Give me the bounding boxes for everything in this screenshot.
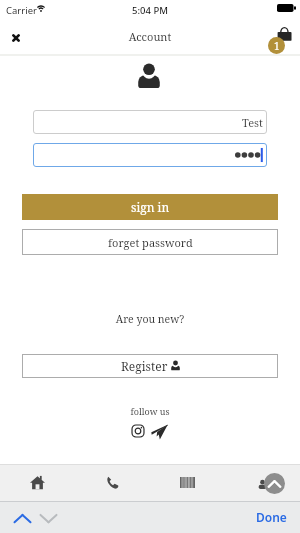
staticText: Account [0,29,300,44]
staticText: Done [256,509,287,525]
button[interactable] [33,143,267,167]
button[interactable]: Close [5,27,27,49]
staticText: 5:04 PM [0,4,300,17]
button[interactable]: Shopping bag [266,25,296,55]
staticText: forget password [108,235,193,250]
button[interactable]: Done [250,503,293,531]
button[interactable]: sign in [22,194,278,220]
button[interactable]: Scan barcode [150,464,225,501]
staticText: Test [242,115,263,130]
staticText: Are you new? [0,312,300,326]
button[interactable]: forget password [22,229,278,255]
button[interactable]: Instagram [131,424,145,438]
staticText: follow us [0,405,300,417]
button[interactable]: Home [0,464,75,501]
staticText: Carrier [6,4,37,17]
button[interactable]: Previous field [8,504,36,532]
button[interactable]: Call us [75,464,150,501]
staticText: Register [121,358,168,374]
button[interactable]: Next field [34,504,62,532]
staticText: sign in [131,199,170,215]
button[interactable]: Account [225,464,300,501]
button[interactable]: Telegram [151,423,168,440]
button[interactable]: Test [33,110,267,134]
button[interactable]: Register [22,354,278,378]
staticText: 1 [274,39,280,53]
